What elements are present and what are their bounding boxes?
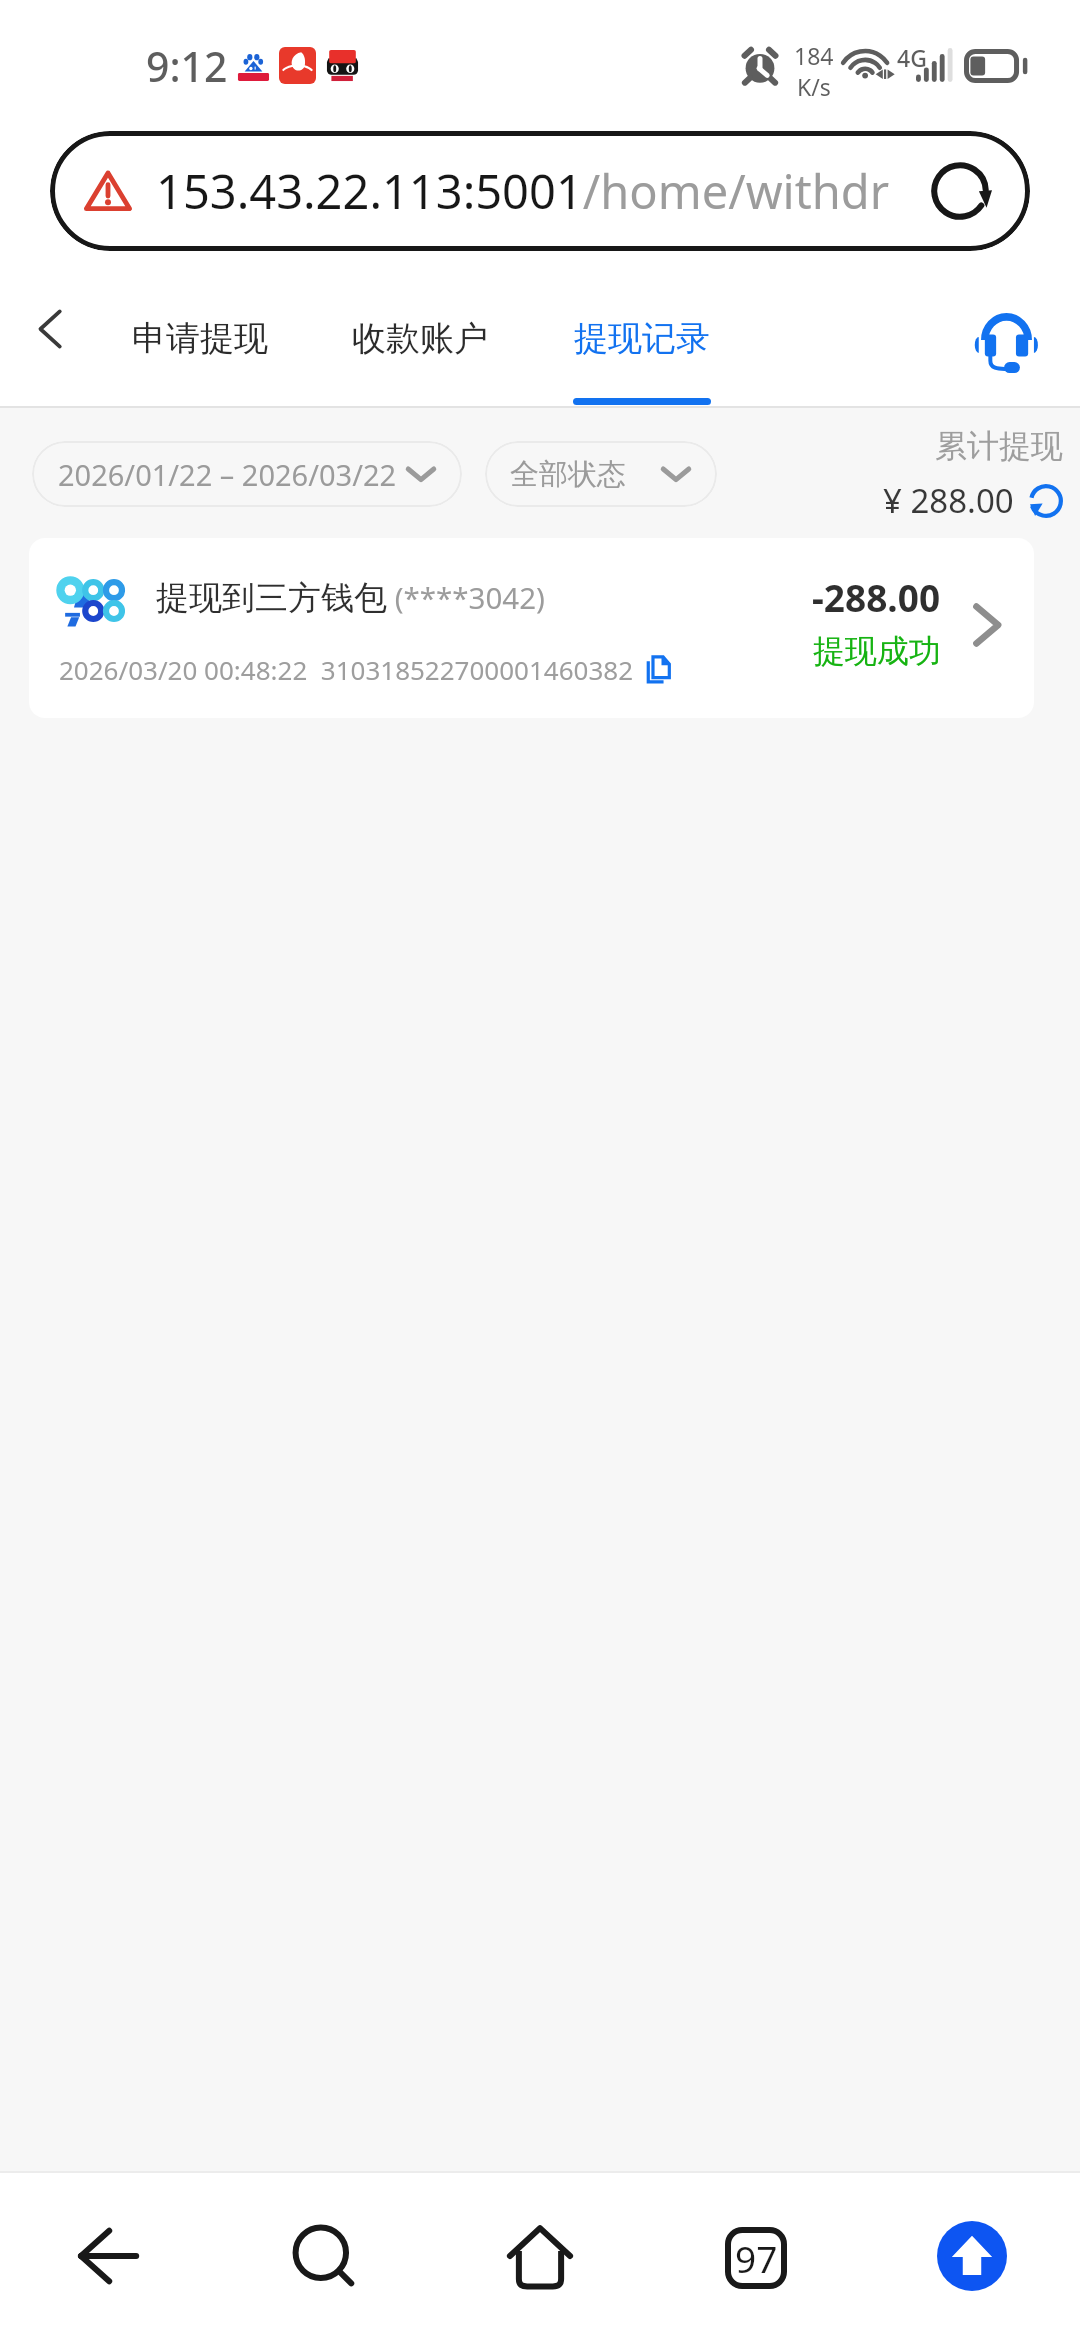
staticText: 153.43.22.113:5001/home/withdraw [156,159,889,223]
button[interactable]: Back [8,286,94,372]
staticText: -288.00 [812,572,941,622]
button[interactable]: 提现到三方钱包 (****3042) [29,538,1034,718]
staticText: 2026/03/20 00:48:22 31031852270000146038… [59,652,634,687]
button[interactable]: 收款账户 [330,282,510,408]
button[interactable]: Tabs, 97 open [648,2173,864,2340]
staticText: 累计提现 [935,426,1063,466]
button[interactable]: Copy order number [639,650,677,688]
button[interactable]: Home [432,2173,648,2340]
staticText: 收款账户 [352,317,488,360]
staticText: 9:12 [146,38,228,94]
staticText: 2026/01/22 – 2026/03/22 [58,455,397,494]
staticText: 184 [794,40,834,71]
staticText: 提现记录 [574,317,710,360]
staticText: 97 [735,2233,778,2283]
button[interactable]: 153.43.22.113:5001/home/withdraw [50,131,1030,251]
staticText: ¥ 288.00 [883,478,1014,523]
button[interactable]: Search [216,2173,432,2340]
button[interactable]: 提现记录 [552,282,732,408]
button[interactable]: 2026/01/22 – 2026/03/22 [32,441,462,507]
button[interactable]: Back [0,2173,216,2340]
button[interactable]: 申请提现 [110,282,290,408]
staticText: 提现成功 [813,631,941,671]
staticText: 申请提现 [132,317,268,360]
button[interactable]: Refresh total [1028,483,1063,518]
staticText: 全部状态 [510,456,626,493]
button[interactable]: 全部状态 [485,441,717,507]
staticText: K/s [797,71,831,102]
staticText: 提现到三方钱包 (****3042) [156,577,545,619]
button[interactable]: Customer service [962,303,1051,381]
staticText: 4G [897,42,927,73]
button[interactable]: Refresh page [921,152,999,230]
button[interactable]: Scroll to top [864,2173,1080,2340]
